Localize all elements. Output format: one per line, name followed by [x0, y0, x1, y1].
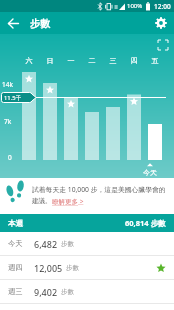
button[interactable]: 本週: [0, 214, 174, 232]
staticText: 本週: [8, 219, 23, 228]
staticText: 六: [22, 56, 36, 65]
staticText: 步數: [61, 288, 74, 296]
staticText: 一: [64, 56, 78, 65]
button[interactable]: [4, 14, 22, 32]
staticText: 四: [127, 56, 141, 65]
staticText: 步數: [30, 17, 50, 30]
button[interactable]: 週四: [0, 256, 174, 279]
staticText: 12:00: [154, 2, 171, 11]
staticText: 步數: [66, 264, 79, 272]
staticText: 11.5千: [4, 94, 22, 102]
staticText: 五: [148, 56, 162, 65]
staticText: 6,482: [34, 238, 58, 250]
staticText: 步數: [61, 240, 74, 248]
staticText: 7k: [4, 117, 12, 126]
staticText: 14k: [2, 80, 13, 89]
button[interactable]: 今天: [0, 232, 174, 255]
staticText: 12,005: [34, 262, 63, 274]
staticText: 0: [8, 153, 12, 162]
staticText: 試着每天走 10,000 步，這是美國心臟學會的: [32, 185, 166, 194]
button[interactable]: 週三: [0, 280, 174, 303]
staticText: 週四: [8, 263, 23, 272]
staticText: 9,402: [34, 286, 58, 298]
staticText: 二: [85, 56, 99, 65]
staticText: 60,814 步數: [125, 218, 166, 228]
button[interactable]: [151, 36, 169, 54]
button[interactable]: 建議。: [32, 197, 84, 206]
staticText: 三: [106, 56, 120, 65]
staticText: 今天: [8, 239, 23, 248]
button[interactable]: [152, 14, 170, 32]
staticText: 週三: [8, 287, 23, 296]
staticText: 100%: [127, 2, 143, 10]
staticText: 今天: [143, 168, 157, 177]
staticText: 建議。: [32, 197, 52, 205]
staticText: 日: [43, 56, 57, 65]
staticText: 瞭解更多 >: [52, 197, 84, 206]
